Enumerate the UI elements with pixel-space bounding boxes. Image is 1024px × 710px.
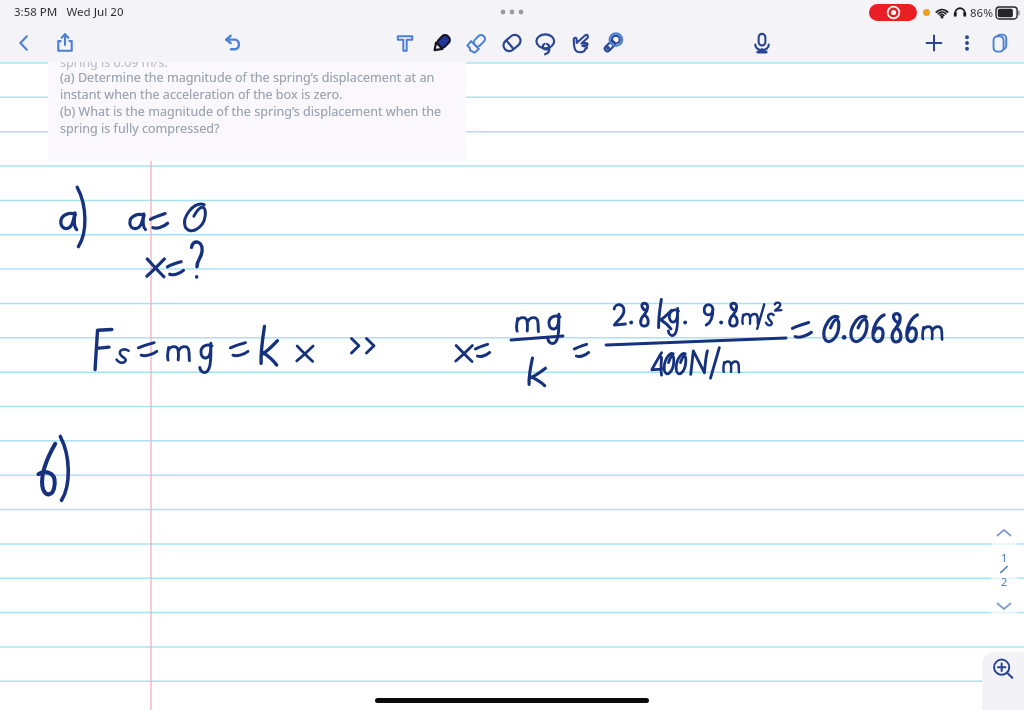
staticText: spring is fully compressed?: [60, 120, 220, 137]
staticText: 86%: [970, 5, 993, 21]
button[interactable]: Hand tool: [566, 27, 594, 59]
staticText: (b) What is the magnitude of the spring’…: [60, 103, 442, 120]
button[interactable]: Undo: [219, 27, 247, 59]
button[interactable]: Zoom in: [982, 652, 1024, 710]
button[interactable]: Highlighter: [463, 27, 491, 59]
staticText: (a) Determine the magnitude of the sprin…: [60, 69, 435, 86]
staticText: 2: [1001, 574, 1008, 589]
button[interactable]: Pen tool: [428, 27, 456, 59]
button[interactable]: Shape tool: [599, 27, 627, 59]
button[interactable]: Recording: [869, 4, 917, 21]
staticText: spring is 0.09 m/s.: [60, 54, 168, 71]
button[interactable]: Record audio: [748, 27, 776, 59]
button[interactable]: Pages: [986, 27, 1014, 59]
button[interactable]: Text tool: [391, 27, 419, 59]
staticText: 3:58 PM Wed Jul 20: [14, 4, 124, 20]
button[interactable]: Add: [920, 27, 948, 59]
button[interactable]: Back: [10, 27, 38, 59]
button[interactable]: Lasso: [532, 27, 560, 59]
button[interactable]: Share: [51, 27, 79, 59]
button[interactable]: Page navigation: [991, 513, 1017, 625]
staticText: instant when the acceleration of the box…: [60, 86, 343, 103]
button[interactable]: More options: [953, 27, 981, 59]
staticText: 1: [1001, 550, 1008, 565]
button[interactable]: Eraser: [498, 27, 526, 59]
